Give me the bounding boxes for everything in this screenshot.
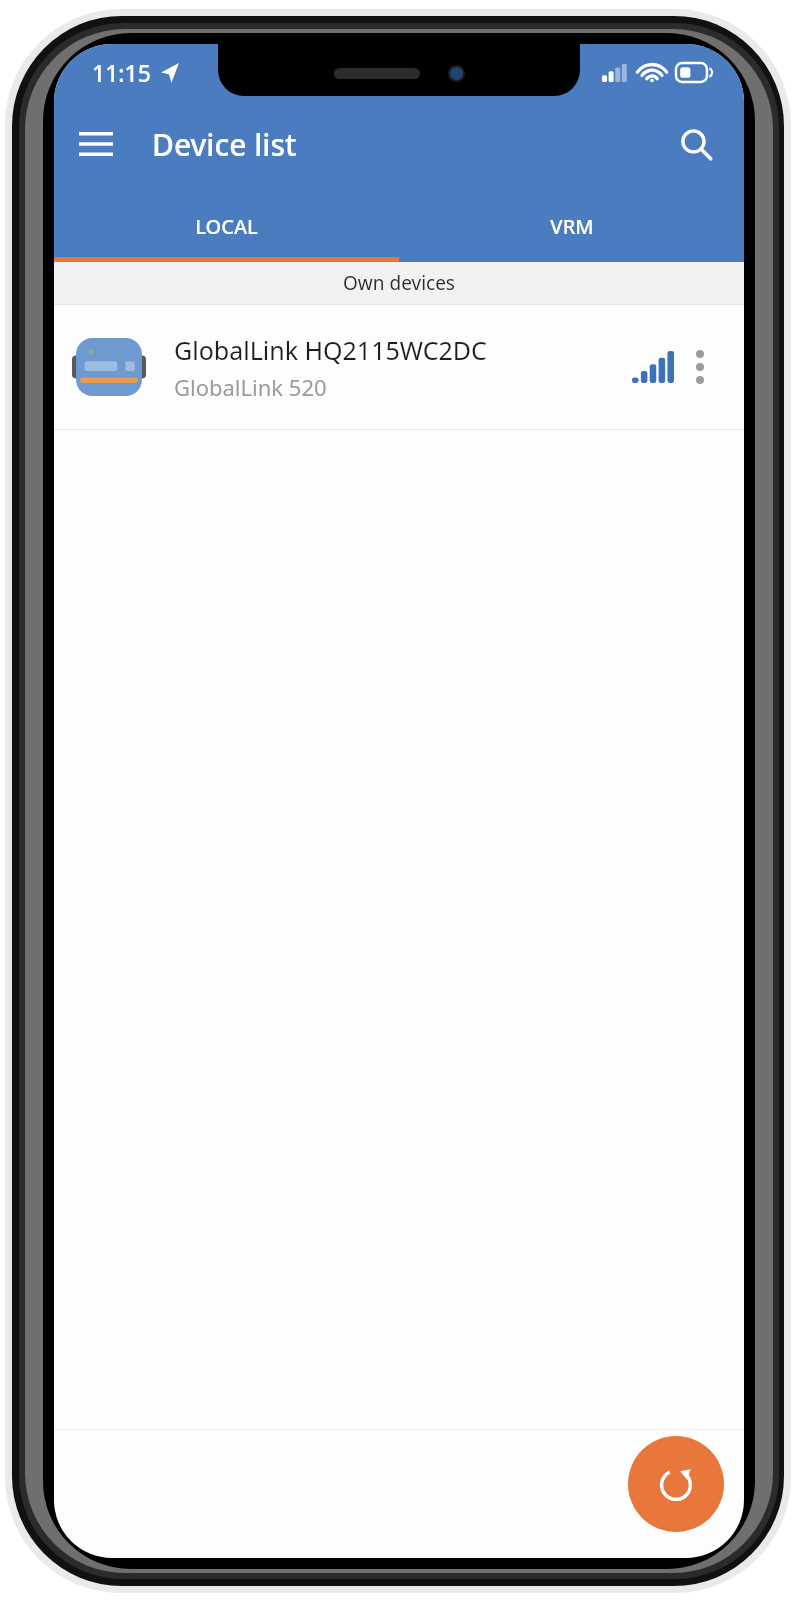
button[interactable]: GlobalLink HQ2115WC2DC [54,305,744,429]
button[interactable]: LOCAL [54,195,399,257]
button[interactable]: Open navigation menu [66,114,126,174]
button[interactable]: Refresh [628,1436,724,1532]
staticText: LOCAL [195,213,258,240]
button[interactable]: More options [674,331,726,403]
staticText: GlobalLink HQ2115WC2DC [174,333,487,367]
button[interactable]: Search [666,114,726,174]
staticText: 11:15 [92,57,151,88]
staticText: VRM [550,213,594,240]
button[interactable]: VRM [399,195,744,257]
staticText: Device list [152,124,297,165]
staticText: Own devices [343,270,455,296]
staticText: GlobalLink 520 [174,372,327,402]
